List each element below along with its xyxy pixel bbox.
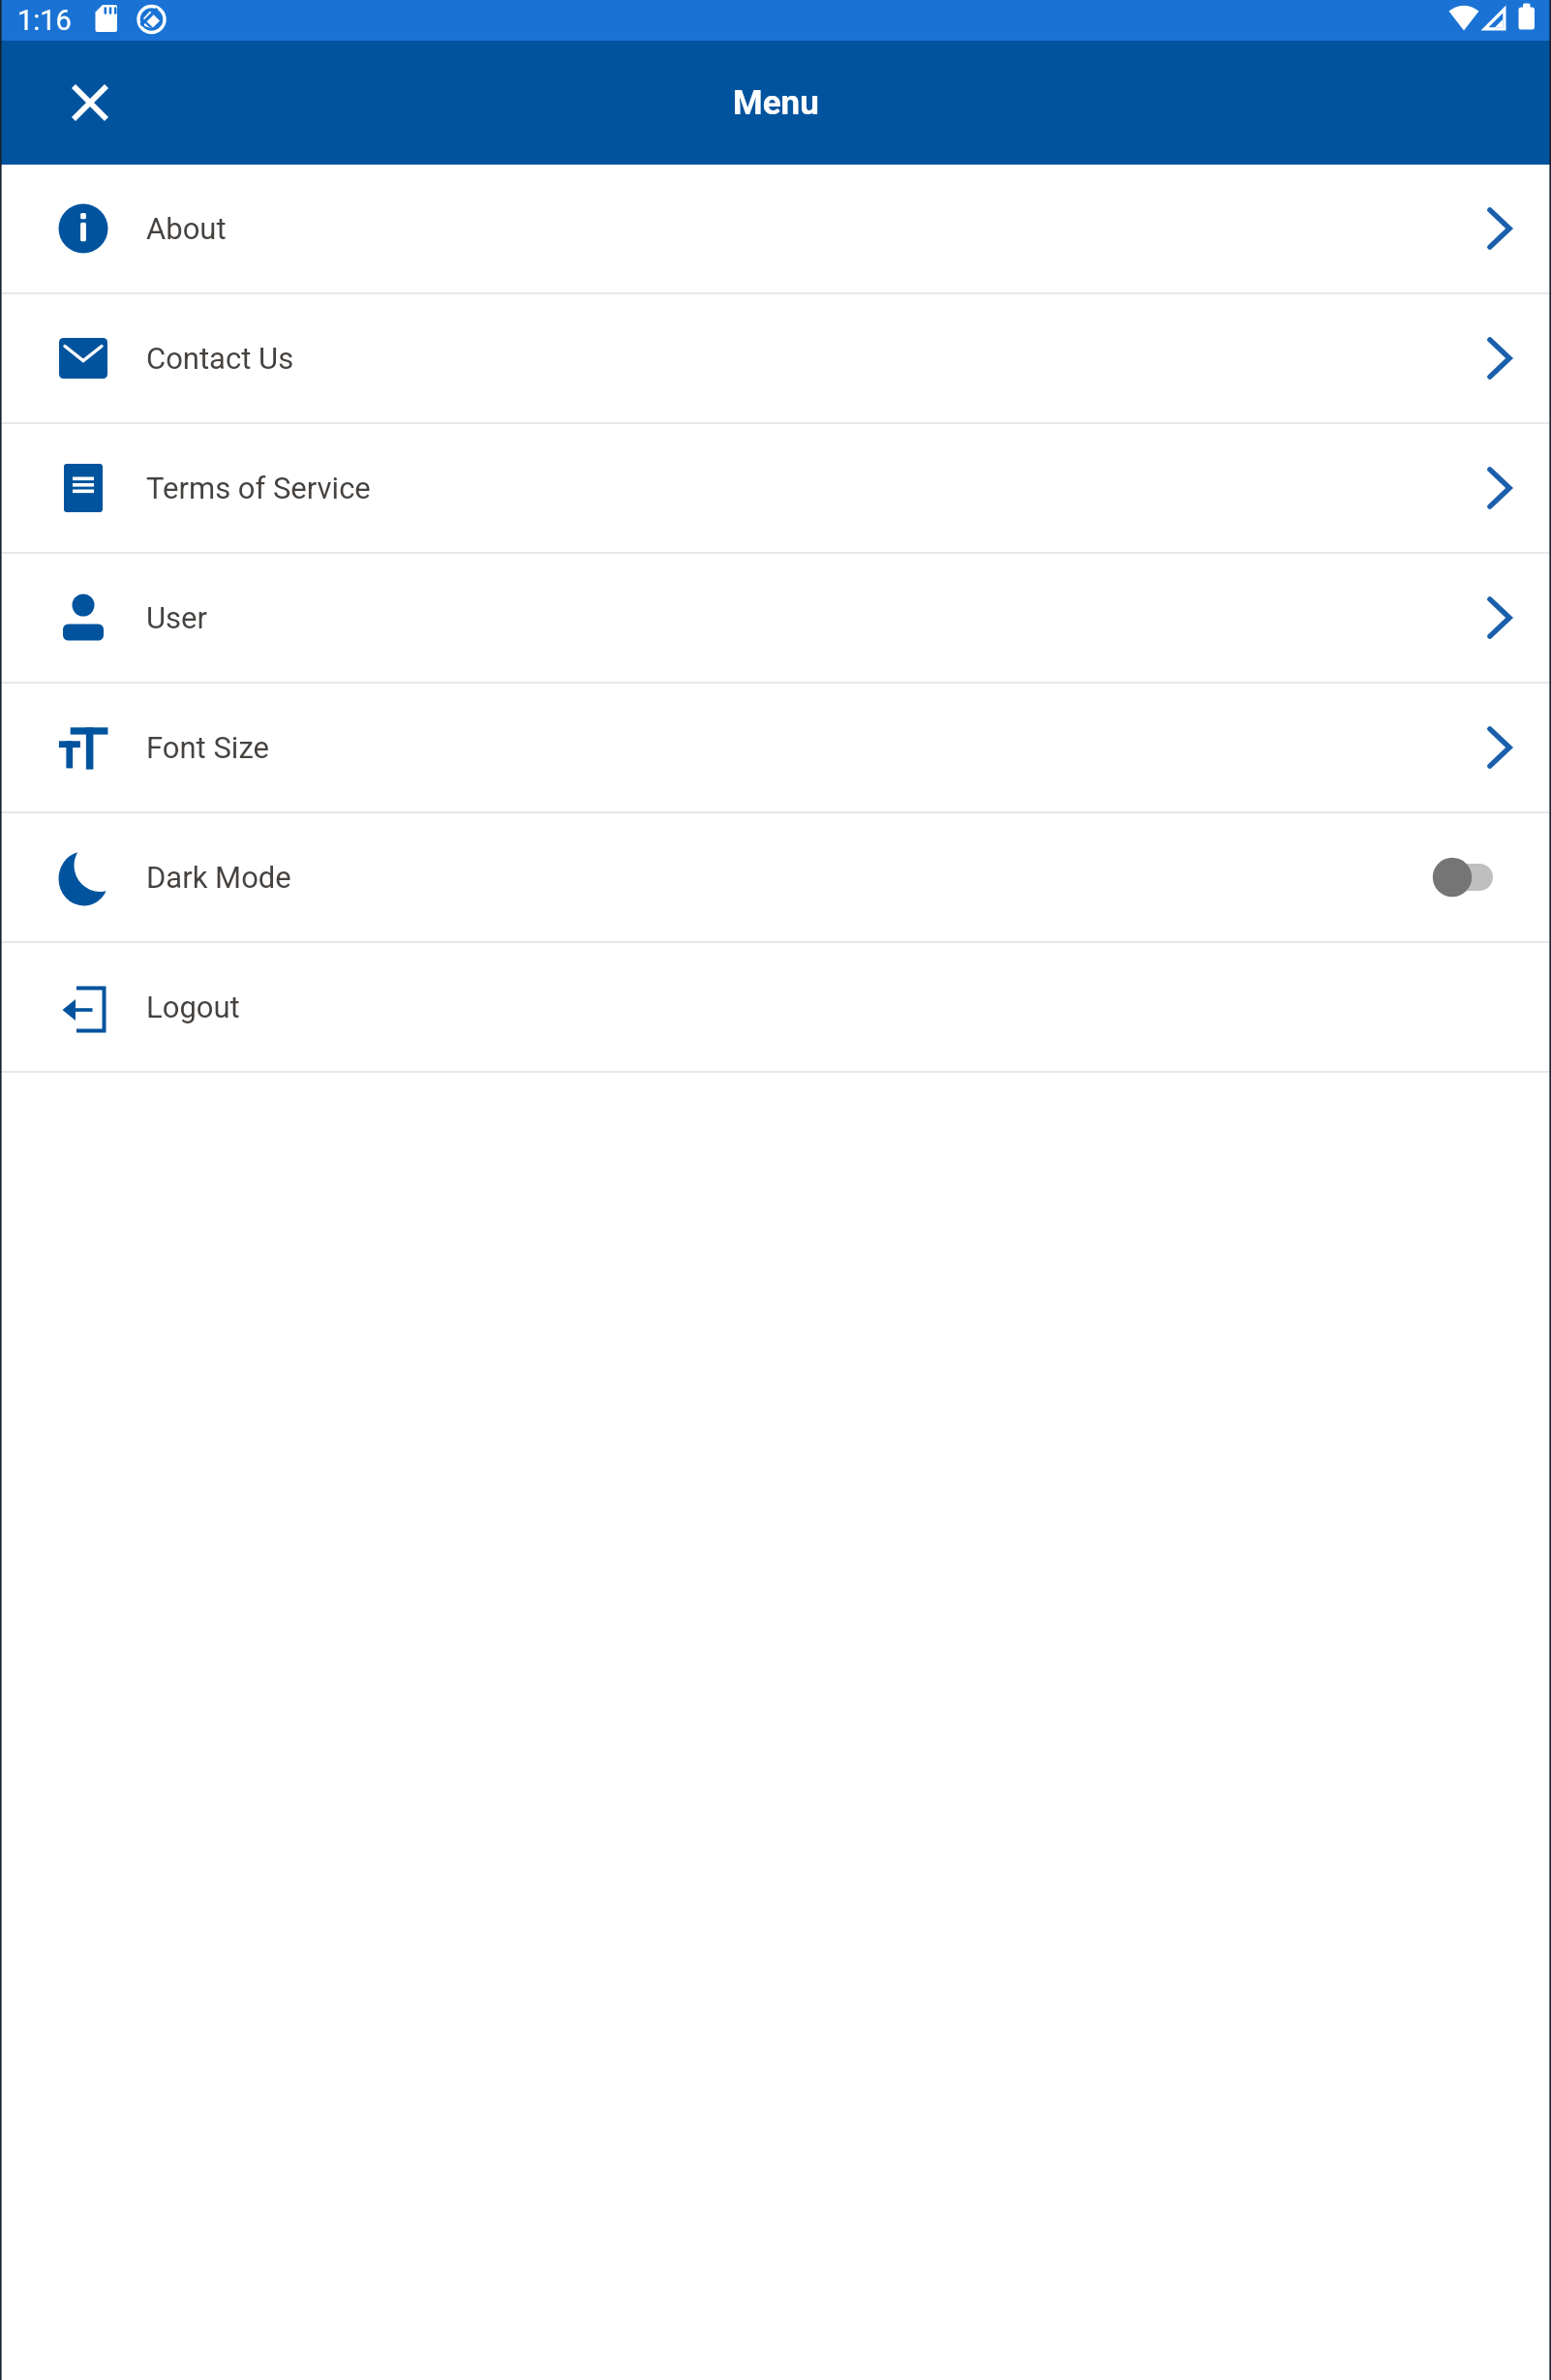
button[interactable]: Close [44, 56, 137, 149]
staticText: User [146, 600, 208, 635]
button[interactable]: About [0, 165, 1551, 292]
staticText: About [146, 211, 227, 246]
staticText: Font Size [146, 730, 269, 765]
button[interactable]: Dark Mode toggle [1433, 852, 1512, 902]
staticText: Contact Us [146, 341, 294, 376]
button[interactable]: Font Size [0, 684, 1551, 811]
staticText: Menu [733, 83, 819, 123]
button[interactable]: User [0, 554, 1551, 682]
button[interactable]: Terms of Service [0, 424, 1551, 552]
button[interactable]: Contact Us [0, 294, 1551, 422]
staticText: Dark Mode [146, 860, 291, 895]
staticText: Logout [146, 990, 240, 1024]
button[interactable]: Dark Mode [0, 813, 1551, 941]
staticText: 1:16 [17, 4, 72, 37]
staticText: Terms of Service [146, 471, 371, 505]
button[interactable]: Logout [0, 943, 1551, 1071]
